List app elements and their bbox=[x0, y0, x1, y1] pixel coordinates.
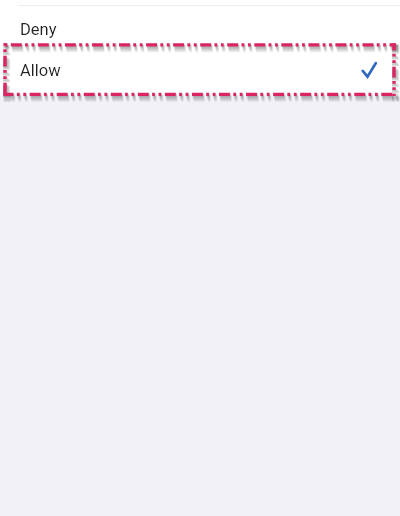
staticText: Allow bbox=[20, 61, 61, 80]
staticText: Deny bbox=[20, 20, 57, 39]
other: Selected bbox=[362, 56, 390, 84]
button[interactable]: Deny bbox=[0, 9, 400, 49]
button[interactable]: Allow bbox=[0, 45, 400, 95]
